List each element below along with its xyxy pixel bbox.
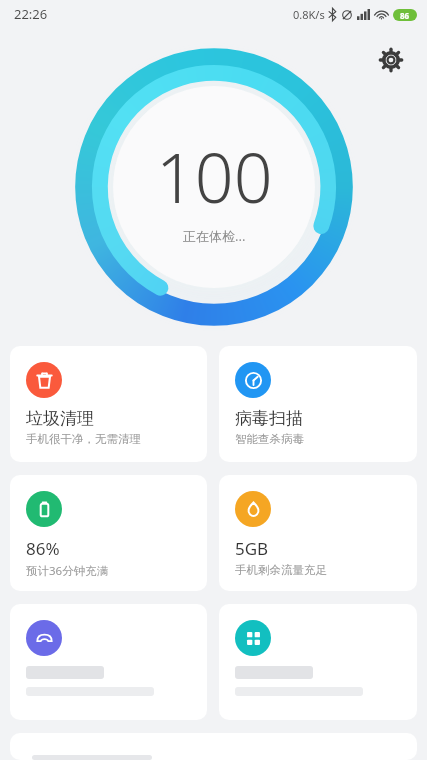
staticText: 智能查杀病毒 xyxy=(235,432,304,446)
staticText: 5GB xyxy=(235,537,269,560)
staticText: 病毒扫描 xyxy=(235,408,303,429)
staticText: 100 xyxy=(156,130,273,223)
button[interactable]: 病毒扫描 xyxy=(219,346,417,462)
button[interactable]: 100 xyxy=(69,42,359,332)
staticText: 手机很干净，无需清理 xyxy=(26,432,141,446)
button[interactable] xyxy=(219,604,417,720)
button[interactable]: Settings xyxy=(373,42,409,78)
staticText: 86% xyxy=(26,537,60,560)
staticText: 垃圾清理 xyxy=(26,408,94,429)
staticText: 22:26 xyxy=(14,5,48,23)
button[interactable]: 5GB xyxy=(219,475,417,591)
button[interactable] xyxy=(10,733,417,760)
staticText: 86 xyxy=(400,10,410,21)
button[interactable]: 86% xyxy=(10,475,207,591)
staticText: 预计36分钟充满 xyxy=(26,563,109,579)
staticText: 正在体检... xyxy=(183,227,246,245)
button[interactable]: 垃圾清理 xyxy=(10,346,207,462)
staticText: 0.8K/s xyxy=(293,7,325,22)
staticText: 手机剩余流量充足 xyxy=(235,563,327,577)
button[interactable] xyxy=(10,604,207,720)
